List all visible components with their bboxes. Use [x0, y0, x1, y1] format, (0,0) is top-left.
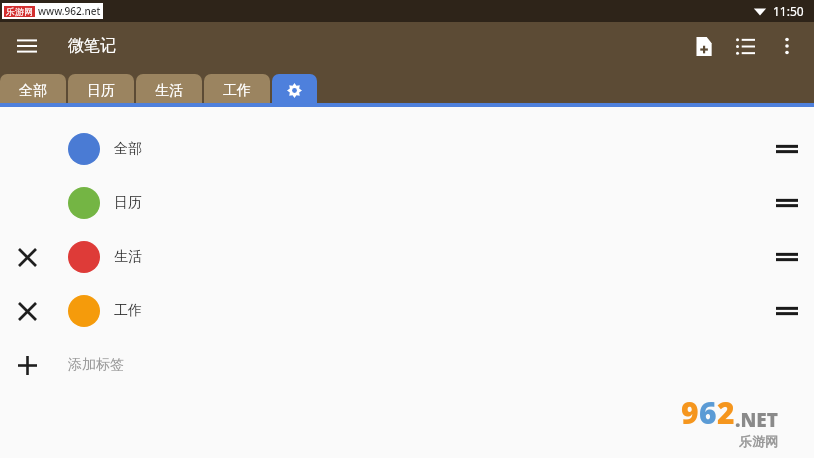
button[interactable]: Change colour for 生活 [68, 241, 100, 273]
staticText: 生活 [114, 248, 142, 266]
staticText: 日历 [87, 82, 115, 100]
button[interactable]: Change colour for 全部 [68, 133, 100, 165]
staticText: 添加标签 [68, 356, 124, 374]
button[interactable]: Reorder 生活 [768, 238, 806, 276]
button[interactable]: Delete 工作 [0, 284, 814, 338]
button[interactable]: Settings tab [272, 74, 317, 107]
button[interactable]: More options [766, 25, 808, 67]
staticText: www.962.net [38, 4, 101, 18]
button[interactable]: Change colour for 全部 [0, 122, 814, 176]
button[interactable]: Reorder 工作 [768, 292, 806, 330]
button[interactable]: Reorder 全部 [768, 130, 806, 168]
staticText: 工作 [114, 302, 142, 320]
staticText: 乐游网 [739, 433, 778, 448]
button[interactable]: 生活 [136, 74, 202, 107]
staticText: 2 [717, 392, 735, 433]
staticText: 微笔记 [68, 36, 116, 56]
button[interactable]: Switch list view [724, 25, 766, 67]
button[interactable]: Open navigation drawer [10, 29, 44, 63]
button[interactable]: Delete 生活 [0, 230, 814, 284]
staticText: 9 [681, 392, 699, 433]
button[interactable]: Change colour for 工作 [68, 295, 100, 327]
staticText: .NET [735, 407, 778, 433]
button[interactable]: Change colour for 日历 [0, 176, 814, 230]
staticText: 6 [699, 392, 717, 433]
staticText: 全部 [114, 140, 142, 158]
button[interactable]: 全部 [0, 74, 66, 107]
button[interactable]: Delete 生活 [8, 238, 46, 276]
button[interactable]: Change colour for 日历 [68, 187, 100, 219]
button[interactable]: 工作 [204, 74, 270, 107]
button[interactable]: 添加标签 [0, 338, 814, 392]
staticText: 日历 [114, 194, 142, 212]
staticText: 乐游网 [6, 6, 33, 17]
button[interactable]: Delete 工作 [8, 292, 46, 330]
staticText: 工作 [223, 82, 251, 100]
staticText: 11:50 [773, 3, 804, 19]
button[interactable]: New note [682, 25, 724, 67]
button[interactable]: Reorder 日历 [768, 184, 806, 222]
button[interactable]: 日历 [68, 74, 134, 107]
staticText: 全部 [19, 82, 47, 100]
staticText: 生活 [155, 82, 183, 100]
